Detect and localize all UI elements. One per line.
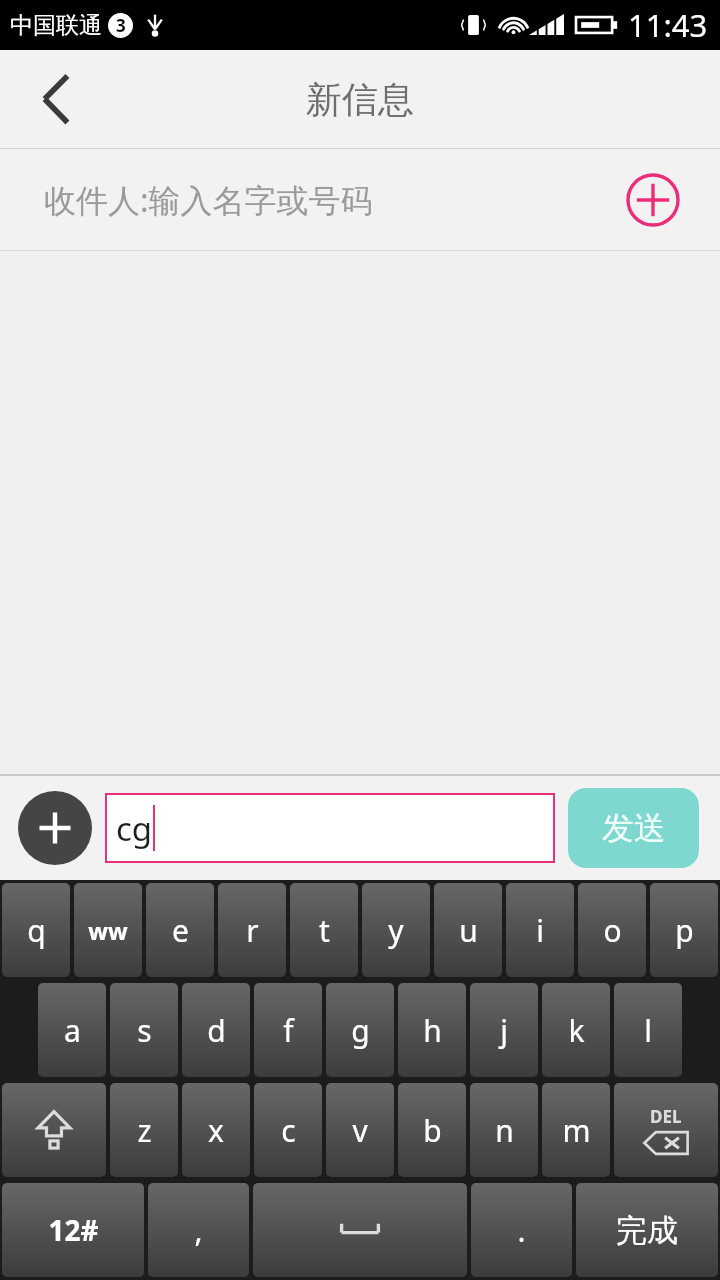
staticText: q xyxy=(27,910,46,951)
button[interactable]: Back xyxy=(0,50,112,148)
staticText: c xyxy=(281,1110,296,1151)
staticText: u xyxy=(459,910,478,951)
staticText: l xyxy=(644,1010,652,1051)
button[interactable]: m xyxy=(542,1083,610,1177)
staticText: a xyxy=(64,1010,81,1051)
button[interactable]: j xyxy=(470,983,538,1077)
button[interactable]: 完成 xyxy=(576,1183,718,1277)
staticText: cg xyxy=(116,806,153,851)
button[interactable]: ww xyxy=(74,883,142,977)
button[interactable]: k xyxy=(542,983,610,1077)
button[interactable]: 12# xyxy=(2,1183,144,1277)
button[interactable]: , xyxy=(148,1183,249,1277)
button[interactable]: Add recipient xyxy=(624,171,682,229)
button[interactable]: n xyxy=(470,1083,538,1177)
button[interactable]: p xyxy=(650,883,718,977)
button[interactable]: b xyxy=(398,1083,466,1177)
staticText: e xyxy=(172,910,189,951)
button[interactable]: r xyxy=(218,883,286,977)
staticText: h xyxy=(423,1010,442,1051)
button[interactable]: Delete xyxy=(614,1083,718,1177)
staticText: f xyxy=(283,1010,294,1051)
button[interactable]: Attach xyxy=(18,791,92,865)
button[interactable]: cg xyxy=(105,793,555,863)
staticText: 12# xyxy=(48,1211,99,1249)
staticText: i xyxy=(536,910,544,951)
staticText: j xyxy=(500,1010,508,1051)
button[interactable]: s xyxy=(110,983,178,1077)
staticText: 发送 xyxy=(602,808,666,848)
staticText: 完成 xyxy=(616,1211,678,1250)
button[interactable]: . xyxy=(471,1183,572,1277)
staticText: 中国联通 xyxy=(10,11,102,40)
staticText: . xyxy=(517,1210,526,1251)
button[interactable]: 发送 xyxy=(568,788,699,868)
button[interactable]: c xyxy=(254,1083,322,1177)
button[interactable]: u xyxy=(434,883,502,977)
button[interactable]: Shift xyxy=(2,1083,106,1177)
button[interactable]: h xyxy=(398,983,466,1077)
staticText: y xyxy=(388,910,404,951)
staticText: g xyxy=(351,1010,370,1051)
button[interactable]: a xyxy=(38,983,106,1077)
staticText: , xyxy=(194,1210,203,1251)
staticText: DEL xyxy=(650,1105,682,1128)
staticText: 11:43 xyxy=(628,4,708,46)
staticText: n xyxy=(495,1110,514,1151)
staticText: t xyxy=(319,910,330,951)
button[interactable]: y xyxy=(362,883,430,977)
staticText: z xyxy=(137,1110,152,1151)
button[interactable]: e xyxy=(146,883,214,977)
staticText: o xyxy=(603,910,622,951)
staticText: s xyxy=(137,1010,152,1051)
button[interactable]: l xyxy=(614,983,682,1077)
button[interactable]: x xyxy=(182,1083,250,1177)
staticText: 新信息 xyxy=(306,77,414,122)
staticText: d xyxy=(207,1010,226,1051)
button[interactable]: Space xyxy=(253,1183,467,1277)
button[interactable]: g xyxy=(326,983,394,1077)
button[interactable]: o xyxy=(578,883,646,977)
button[interactable]: f xyxy=(254,983,322,1077)
staticText: 收件人:输入名字或号码 xyxy=(44,178,373,222)
button[interactable]: z xyxy=(110,1083,178,1177)
staticText: v xyxy=(352,1110,368,1151)
button[interactable]: v xyxy=(326,1083,394,1177)
button[interactable]: d xyxy=(182,983,250,1077)
staticText: b xyxy=(423,1110,442,1151)
staticText: m xyxy=(562,1110,591,1151)
staticText: p xyxy=(675,910,694,951)
staticText: k xyxy=(568,1010,585,1051)
staticText: ww xyxy=(88,915,128,946)
button[interactable]: i xyxy=(506,883,574,977)
button[interactable]: q xyxy=(2,883,70,977)
button[interactable]: t xyxy=(290,883,358,977)
staticText: r xyxy=(246,910,259,951)
staticText: x xyxy=(208,1110,224,1151)
staticText: 3 xyxy=(116,14,126,37)
